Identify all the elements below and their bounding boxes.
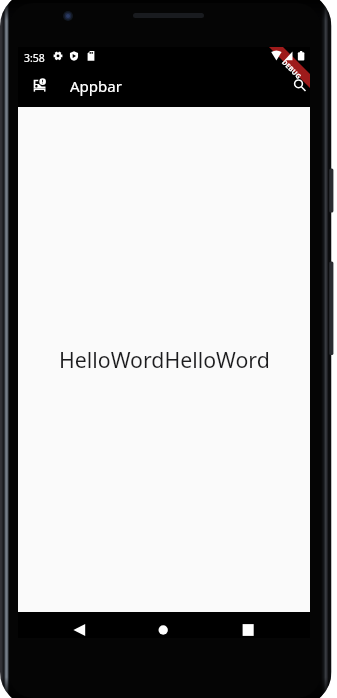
button[interactable]: Search xyxy=(288,73,309,94)
button[interactable]: Bedroom alert xyxy=(33,78,47,92)
button[interactable]: Home xyxy=(151,612,177,638)
staticText: HelloWordHelloWord xyxy=(59,345,270,374)
button[interactable]: Recent apps xyxy=(230,612,256,638)
staticText: DEBUG xyxy=(280,58,303,81)
staticText: 3:58 xyxy=(24,51,45,65)
button[interactable]: Back xyxy=(68,612,94,638)
staticText: Appbar xyxy=(70,76,122,96)
